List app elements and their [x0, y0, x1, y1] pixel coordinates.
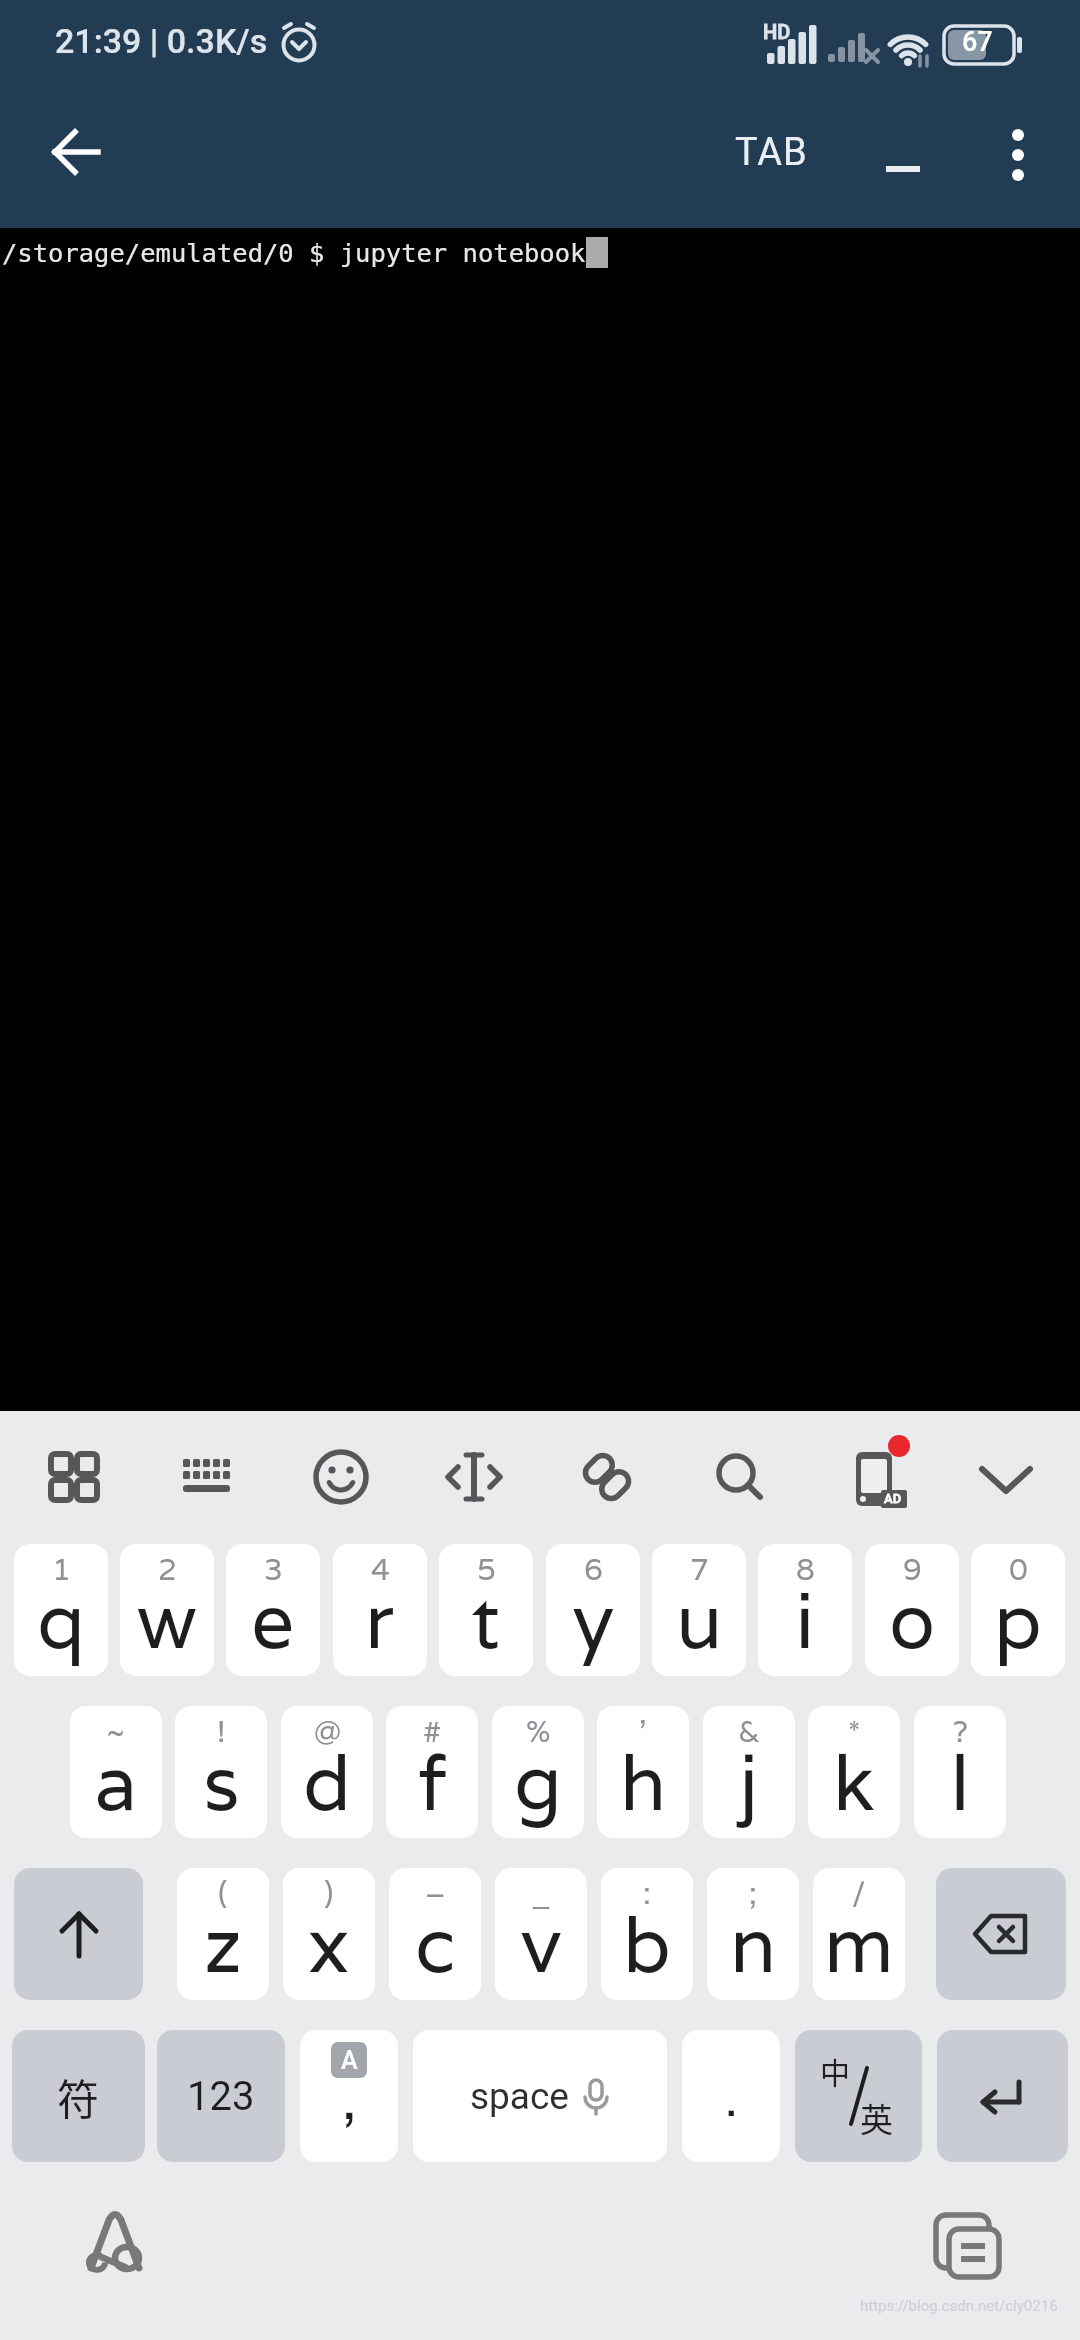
button[interactable]: AD [829, 1432, 919, 1522]
button[interactable] [920, 2201, 1020, 2291]
staticText: 21:39 | 0.3K/s [55, 21, 268, 61]
staticText: HD [763, 20, 791, 43]
button[interactable]: 2 [120, 1544, 214, 1676]
staticText: 67 [962, 26, 993, 58]
button[interactable] [429, 1432, 519, 1522]
button[interactable] [860, 120, 950, 184]
staticText: ( [218, 1874, 228, 1913]
button[interactable]: # [386, 1706, 478, 1838]
staticText: l [950, 1733, 971, 1832]
button[interactable]: 9 [865, 1544, 959, 1676]
button[interactable]: _ [495, 1868, 587, 2000]
staticText: % [526, 1712, 551, 1751]
staticText: s [203, 1733, 240, 1832]
staticText: g [514, 1733, 562, 1832]
button[interactable]: 5 [439, 1544, 533, 1676]
staticText: . [725, 2067, 738, 2129]
button[interactable]: 0 [971, 1544, 1065, 1676]
staticText: , [342, 2062, 357, 2135]
staticText: n [730, 1895, 777, 1994]
staticText: 4 [371, 1550, 390, 1589]
button[interactable] [162, 1432, 252, 1522]
button[interactable]: 6 [546, 1544, 640, 1676]
staticText: 6 [584, 1550, 603, 1589]
staticText: r [365, 1571, 395, 1670]
staticText: x [308, 1895, 350, 1994]
button[interactable] [937, 2030, 1068, 2162]
staticText: j [739, 1733, 759, 1832]
staticText: v [521, 1895, 562, 1994]
staticText: * [848, 1712, 861, 1751]
button[interactable]: 7 [652, 1544, 746, 1676]
staticText: ) [324, 1874, 334, 1913]
button[interactable] [14, 1868, 143, 2000]
staticText: k [833, 1733, 875, 1832]
button[interactable]: & [703, 1706, 795, 1838]
staticText: 英 [860, 2094, 893, 2142]
button[interactable] [936, 1868, 1066, 2000]
button[interactable]: 123 [157, 2030, 285, 2162]
staticText: 9 [903, 1550, 922, 1589]
button[interactable] [29, 1432, 119, 1522]
staticText: 5 [477, 1550, 496, 1589]
staticText: z [204, 1895, 242, 1994]
button[interactable]: . [682, 2030, 780, 2162]
button[interactable]: TAB [714, 120, 829, 184]
button[interactable]: 8 [758, 1544, 852, 1676]
staticText: w [137, 1571, 197, 1670]
staticText: space [470, 2075, 569, 2118]
button[interactable] [70, 2201, 160, 2291]
button[interactable] [40, 115, 115, 190]
button[interactable]: 3 [226, 1544, 320, 1676]
staticText: ~ [106, 1712, 126, 1751]
button[interactable]: ! [175, 1706, 267, 1838]
button[interactable]: ' [597, 1706, 689, 1838]
button[interactable] [562, 1432, 652, 1522]
staticText: a [95, 1733, 138, 1832]
staticText: 1 [52, 1550, 71, 1589]
staticText: ! [217, 1712, 226, 1751]
button[interactable]: @ [281, 1706, 373, 1838]
staticText: 符 [57, 2066, 100, 2127]
staticText: ' [639, 1712, 647, 1751]
staticText: 中 [820, 2049, 850, 2092]
button[interactable]: ; [707, 1868, 799, 2000]
staticText: – [425, 1874, 446, 1913]
button[interactable]: 符 [12, 2030, 145, 2162]
staticText: e [251, 1571, 295, 1670]
staticText: # [423, 1712, 442, 1751]
button[interactable]: ) [283, 1868, 375, 2000]
button[interactable]: – [389, 1868, 481, 2000]
button[interactable]: * [808, 1706, 900, 1838]
button[interactable]: ? [914, 1706, 1006, 1838]
button[interactable]: ( [177, 1868, 269, 2000]
staticText: t [471, 1571, 501, 1670]
staticText: /storage/emulated/0 $ jupyter notebook [2, 238, 586, 268]
button[interactable] [975, 115, 1060, 190]
staticText: @ [314, 1712, 341, 1751]
button[interactable]: space [413, 2030, 667, 2162]
staticText: 2 [158, 1550, 177, 1589]
staticText: : [643, 1874, 651, 1913]
button[interactable] [695, 1432, 785, 1522]
staticText: f [418, 1733, 447, 1832]
button[interactable]: 中 [795, 2030, 922, 2162]
staticText: u [676, 1571, 723, 1670]
button[interactable]: ~ [70, 1706, 162, 1838]
staticText: i [795, 1571, 815, 1670]
button[interactable]: : [601, 1868, 693, 2000]
staticText: & [738, 1712, 760, 1751]
button[interactable]: A [300, 2030, 398, 2162]
staticText: https://blog.csdn.net/cly0216 [860, 2297, 1058, 2315]
staticText: TAB [735, 130, 808, 175]
button[interactable]: 4 [333, 1544, 427, 1676]
staticText: ? [953, 1712, 968, 1751]
staticText: A [341, 2046, 358, 2075]
button[interactable]: 1 [14, 1544, 108, 1676]
button[interactable] [296, 1432, 386, 1522]
staticText: y [573, 1571, 614, 1670]
button[interactable] [961, 1432, 1051, 1522]
staticText: c [415, 1895, 456, 1994]
button[interactable]: / [813, 1868, 905, 2000]
button[interactable]: % [492, 1706, 584, 1838]
